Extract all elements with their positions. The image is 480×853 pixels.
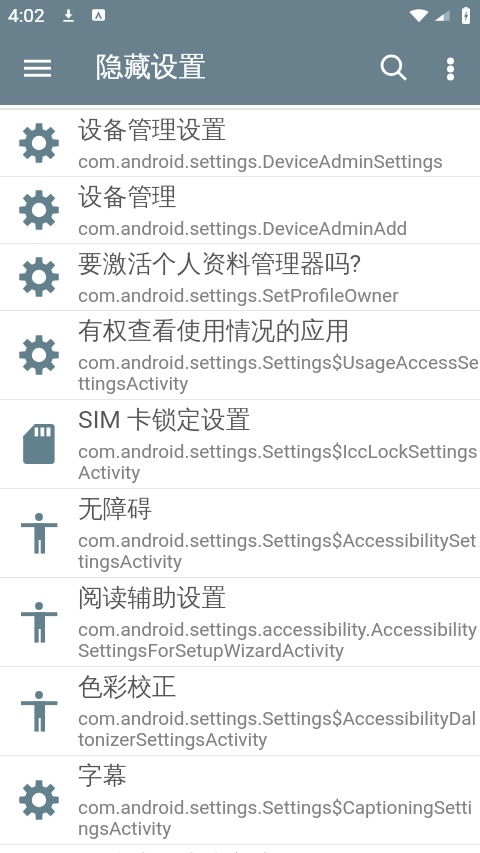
button[interactable]: 色彩校正: [0, 667, 480, 755]
staticText: com.android.settings.Settings$Accessibil…: [78, 529, 480, 573]
staticText: 4:02: [8, 4, 45, 26]
staticText: com.android.settings.DeviceAdminSettings: [78, 150, 443, 172]
button[interactable]: Search: [367, 30, 421, 105]
staticText: com.android.settings.Settings$Captioning…: [78, 796, 480, 840]
staticText: 要激活个人资料管理器吗?: [78, 248, 362, 279]
button[interactable]: Menu: [0, 30, 74, 105]
staticText: 字幕: [78, 760, 128, 791]
staticText: SIM 卡锁定设置: [78, 404, 251, 435]
staticText: com.android.settings.Settings$Accessibil…: [78, 707, 480, 751]
staticText: com.android.settings.Settings$UsageAcces…: [78, 351, 480, 395]
button[interactable]: 有权查看使用情况的应用: [0, 311, 480, 399]
staticText: com.android.settings.Settings$IccLockSet…: [78, 440, 480, 484]
button[interactable]: 要激活个人资料管理器吗?: [0, 244, 480, 310]
button[interactable]: 设备管理设置: [0, 110, 480, 176]
button[interactable]: SIM 卡锁定设置: [0, 400, 480, 488]
staticText: 色彩校正: [78, 671, 177, 702]
staticText: 隐藏设置: [96, 50, 367, 85]
staticText: 有权查看使用情况的应用: [78, 315, 350, 346]
button[interactable]: 阅读辅助设置: [0, 578, 480, 666]
button[interactable]: 设备管理: [0, 177, 480, 243]
button[interactable]: More options: [421, 30, 480, 105]
staticText: 设备管理: [78, 181, 177, 212]
staticText: 无障碍: [78, 493, 153, 524]
button[interactable]: 字幕: [0, 756, 480, 844]
staticText: com.android.settings.SetProfileOwner: [78, 284, 399, 306]
staticText: 辅助功能快捷方式: [78, 849, 276, 853]
staticText: com.android.settings.accessibility.Acces…: [78, 618, 480, 662]
button[interactable]: 无障碍: [0, 489, 480, 577]
staticText: 阅读辅助设置: [78, 582, 227, 613]
staticText: 设备管理设置: [78, 114, 227, 145]
staticText: com.android.settings.DeviceAdminAdd: [78, 217, 408, 239]
